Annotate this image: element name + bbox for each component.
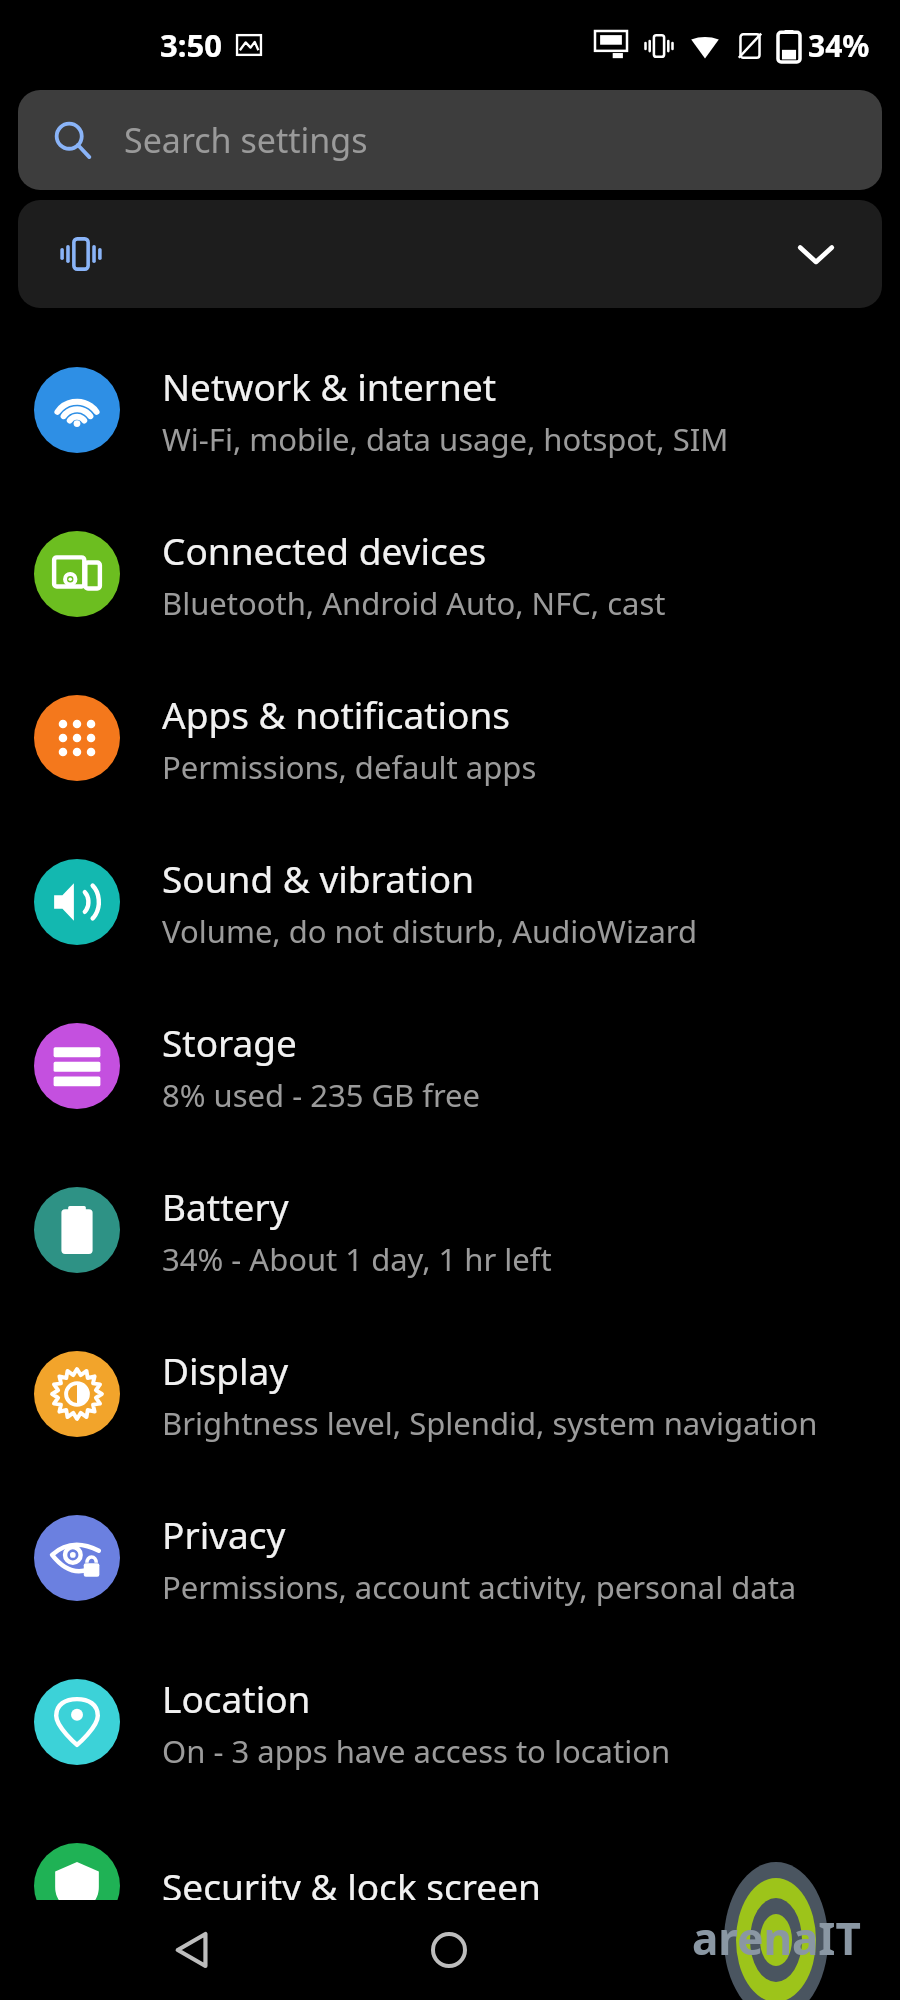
staticText: Volume, do not disturb, AudioWizard	[162, 910, 698, 952]
staticText: Display	[162, 1345, 289, 1395]
staticText: Brightness level, Splendid, system navig…	[162, 1402, 818, 1444]
button[interactable]: Display	[0, 1312, 900, 1476]
staticText: arenaIT	[692, 1908, 861, 1968]
button[interactable]: Connected devices	[0, 492, 900, 656]
button[interactable]: Security & lock screen	[0, 1804, 900, 1968]
staticText: Location	[162, 1673, 311, 1723]
button[interactable]: Network & internet	[0, 328, 900, 492]
staticText: Network & internet	[162, 361, 497, 411]
staticText: 3:50	[160, 24, 222, 66]
staticText: Connected devices	[162, 525, 487, 575]
staticText: Storage	[162, 1017, 297, 1067]
staticText: Privacy	[162, 1509, 286, 1559]
button[interactable]: Privacy	[0, 1476, 900, 1640]
button[interactable]: Back	[152, 1910, 232, 1990]
button[interactable]: Apps & notifications	[0, 656, 900, 820]
staticText: Sound & vibration	[162, 853, 475, 903]
button[interactable]: Storage	[0, 984, 900, 1148]
button[interactable]: Home	[409, 1910, 489, 1990]
button[interactable]: Location	[0, 1640, 900, 1804]
button[interactable]: Search settings	[18, 90, 882, 190]
staticText: 8% used - 235 GB free	[162, 1074, 481, 1116]
staticText: 34% - About 1 day, 1 hr left	[162, 1238, 552, 1280]
staticText: Permissions, default apps	[162, 746, 537, 788]
button[interactable]: Sound & vibration	[0, 820, 900, 984]
staticText: Bluetooth, Android Auto, NFC, cast	[162, 582, 666, 624]
staticText: Permissions, account activity, personal …	[162, 1566, 797, 1608]
button[interactable]: Battery	[0, 1148, 900, 1312]
staticText: Apps & notifications	[162, 689, 511, 739]
button[interactable]: Vibration mode, expand	[18, 200, 882, 308]
staticText: Wi-Fi, mobile, data usage, hotspot, SIM	[162, 418, 729, 460]
staticText: Battery	[162, 1181, 289, 1231]
staticText: Security & lock screen	[162, 1861, 541, 1911]
staticText: On - 3 apps have access to location	[162, 1730, 671, 1772]
staticText: Search settings	[124, 117, 368, 163]
staticText: 34%	[808, 25, 870, 66]
